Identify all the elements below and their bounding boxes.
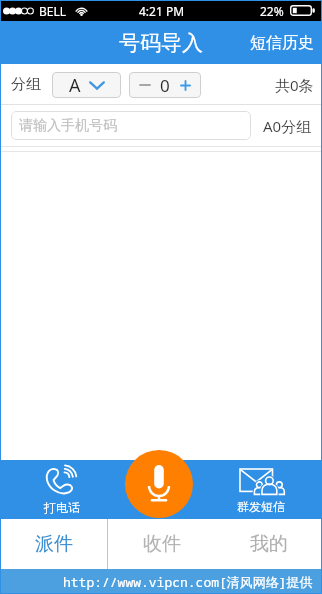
staticText: 分组 <box>11 75 41 94</box>
button[interactable]: 请输入手机号码 <box>11 111 251 140</box>
staticText: 22% <box>260 3 284 19</box>
staticText: 0 <box>160 74 170 97</box>
staticText: 收件 <box>143 532 181 556</box>
button[interactable]: 打电话 <box>0 460 122 519</box>
staticText: 号码导入 <box>119 30 203 56</box>
button[interactable]: 收件 <box>108 519 215 569</box>
staticText: 群发短信 <box>237 499 285 514</box>
staticText: 4:21 PM <box>139 3 185 19</box>
staticText: A <box>69 73 81 98</box>
button[interactable]: Increase <box>170 72 201 98</box>
staticText: A0分组 <box>263 116 312 136</box>
button[interactable]: Voice input <box>125 450 193 518</box>
button[interactable]: A <box>52 72 121 98</box>
staticText: 共0条 <box>275 75 314 95</box>
button[interactable]: 我的 <box>215 519 322 569</box>
staticText: 打电话 <box>44 500 80 515</box>
button[interactable]: Decrease <box>129 72 160 98</box>
staticText: 我的 <box>250 532 288 556</box>
staticText: BELL <box>39 3 67 19</box>
button[interactable]: 派件 <box>0 519 108 569</box>
staticText: 短信历史 <box>250 33 314 53</box>
staticText: http://www.vipcn.com[清风网络]提供 <box>63 573 313 591</box>
button[interactable]: 群发短信 <box>200 460 322 519</box>
staticText: 请输入手机号码 <box>19 117 117 135</box>
staticText: 派件 <box>35 532 73 556</box>
button[interactable]: 短信历史 <box>240 21 322 64</box>
button[interactable]: A0分组 <box>263 116 312 136</box>
